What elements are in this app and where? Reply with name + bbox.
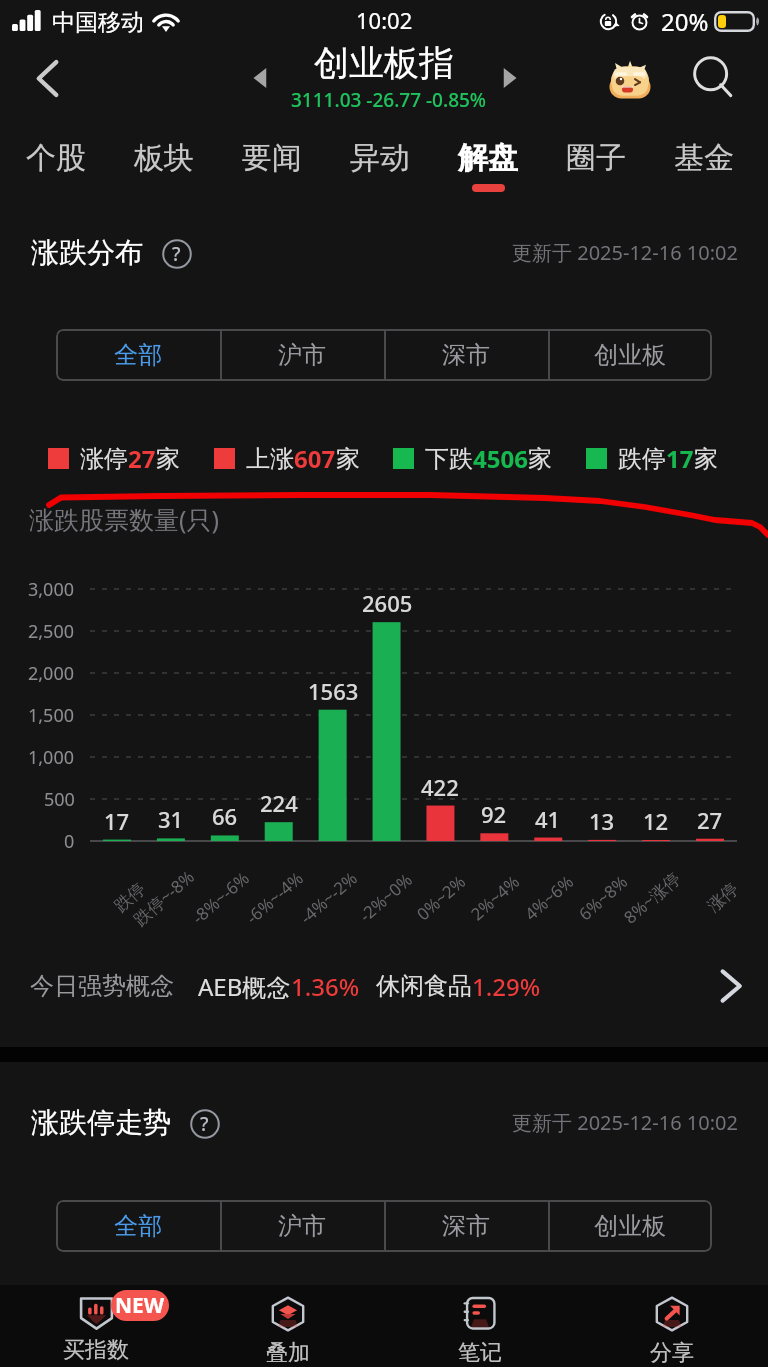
button[interactable]: 全部 bbox=[56, 1200, 220, 1252]
staticText: -2%~0% bbox=[354, 868, 417, 927]
staticText: 3111.03 -26.77 -0.85% bbox=[291, 87, 487, 113]
staticText: 1563 bbox=[308, 676, 359, 706]
staticText: 解盘 bbox=[458, 139, 518, 177]
button[interactable]: 解盘 bbox=[434, 122, 542, 202]
staticText: -6%~-4% bbox=[241, 866, 308, 929]
staticText: 创业板 bbox=[594, 1211, 666, 1241]
button[interactable]: 深市 bbox=[384, 1200, 548, 1252]
staticText: 8%~涨停 bbox=[619, 866, 685, 928]
staticText: 今日强势概念 bbox=[30, 971, 174, 1001]
staticText: ? bbox=[200, 1111, 209, 1137]
staticText: 2%~4% bbox=[466, 870, 524, 925]
staticText: 创业板指 bbox=[314, 41, 454, 85]
staticText: NEW bbox=[115, 1291, 165, 1320]
staticText: 创业板 bbox=[594, 340, 666, 370]
staticText: 深市 bbox=[442, 1211, 490, 1241]
staticText: 4506 bbox=[473, 442, 528, 475]
staticText: 92 bbox=[481, 799, 507, 829]
staticText: 笔记 bbox=[458, 1339, 502, 1367]
staticText: 13 bbox=[589, 806, 615, 836]
staticText: 沪市 bbox=[278, 1211, 326, 1241]
staticText: 全部 bbox=[114, 340, 162, 370]
staticText: 2605 bbox=[362, 588, 413, 618]
staticText: 跌停~-8% bbox=[128, 864, 199, 930]
staticText: 买指数 bbox=[63, 1336, 129, 1364]
staticText: 涨停 bbox=[80, 444, 128, 474]
staticText: 叠加 bbox=[266, 1339, 310, 1367]
staticText: 2,000 bbox=[28, 661, 75, 685]
staticText: 圈子 bbox=[566, 139, 626, 177]
staticText: ? bbox=[172, 241, 181, 267]
button[interactable]: 分享 bbox=[576, 1285, 768, 1367]
staticText: 2,500 bbox=[28, 619, 75, 643]
button[interactable]: 异动 bbox=[326, 122, 434, 202]
button[interactable]: Profile avatar bbox=[598, 48, 662, 112]
button[interactable]: Back bbox=[17, 48, 77, 108]
button[interactable]: 全部 bbox=[56, 329, 220, 381]
button[interactable]: 创业板 bbox=[548, 329, 712, 381]
button[interactable]: 今日强势概念 bbox=[0, 955, 768, 1017]
staticText: 深市 bbox=[442, 340, 490, 370]
staticText: 1,500 bbox=[28, 703, 75, 727]
staticText: 个股 bbox=[26, 139, 86, 177]
staticText: 31 bbox=[158, 804, 184, 834]
staticText: 17 bbox=[666, 442, 694, 475]
staticText: 224 bbox=[260, 788, 298, 818]
staticText: 全部 bbox=[114, 1211, 162, 1241]
staticText: -8%~-6% bbox=[187, 866, 254, 929]
staticText: 10:02 bbox=[356, 5, 413, 35]
staticText: -4%~-2% bbox=[295, 866, 362, 929]
staticText: 上涨 bbox=[246, 444, 294, 474]
button[interactable]: 创业板 bbox=[548, 1200, 712, 1252]
button[interactable]: 深市 bbox=[384, 329, 548, 381]
staticText: 沪市 bbox=[278, 340, 326, 370]
button[interactable]: NEW bbox=[0, 1285, 192, 1367]
button[interactable]: 沪市 bbox=[220, 1200, 384, 1252]
staticText: 板块 bbox=[134, 139, 194, 177]
staticText: 异动 bbox=[350, 139, 410, 177]
staticText: 家 bbox=[156, 444, 180, 474]
staticText: 跌停 bbox=[110, 878, 150, 917]
staticText: 分享 bbox=[650, 1339, 694, 1367]
staticText: 休闲食品 bbox=[376, 971, 472, 1001]
staticText: 涨停 bbox=[703, 878, 743, 917]
button[interactable]: Search bbox=[684, 48, 744, 108]
staticText: 家 bbox=[336, 444, 360, 474]
staticText: 涨跌股票数量(只) bbox=[29, 502, 220, 536]
staticText: 更新于 2025-12-16 10:02 bbox=[512, 1109, 738, 1136]
staticText: 3,000 bbox=[28, 577, 75, 601]
staticText: 下跌 bbox=[425, 444, 473, 474]
button[interactable]: 沪市 bbox=[220, 329, 384, 381]
staticText: 17 bbox=[104, 806, 130, 836]
button[interactable]: 基金 bbox=[650, 122, 758, 202]
staticText: 27 bbox=[697, 805, 723, 835]
staticText: 6%~8% bbox=[574, 870, 632, 925]
button[interactable]: Help bbox=[161, 238, 192, 269]
button[interactable]: 笔记 bbox=[384, 1285, 576, 1367]
button[interactable]: Help bbox=[189, 1108, 220, 1139]
staticText: 500 bbox=[44, 787, 75, 811]
staticText: 家 bbox=[528, 444, 552, 474]
button[interactable]: 叠加 bbox=[192, 1285, 384, 1367]
staticText: 中国移动 bbox=[52, 8, 144, 37]
staticText: 607 bbox=[294, 442, 336, 475]
staticText: 1.36% bbox=[291, 970, 360, 1003]
staticText: AEB概念 bbox=[198, 970, 291, 1003]
staticText: 跌停 bbox=[618, 444, 666, 474]
staticText: 4%~6% bbox=[520, 870, 578, 925]
button[interactable]: 板块 bbox=[110, 122, 218, 202]
staticText: 涨跌分布 bbox=[31, 235, 143, 270]
staticText: 基金 bbox=[674, 139, 734, 177]
staticText: 12 bbox=[643, 806, 669, 836]
button[interactable]: 圈子 bbox=[542, 122, 650, 202]
staticText: 1,000 bbox=[28, 745, 75, 769]
button[interactable]: 个股 bbox=[1, 122, 110, 202]
staticText: 41 bbox=[535, 804, 561, 834]
staticText: 20% bbox=[661, 5, 709, 38]
staticText: 27 bbox=[128, 442, 156, 475]
staticText: 涨跌停走势 bbox=[31, 1105, 171, 1140]
staticText: 更新于 2025-12-16 10:02 bbox=[512, 239, 738, 266]
button[interactable]: 要闻 bbox=[218, 122, 326, 202]
staticText: 要闻 bbox=[242, 139, 302, 177]
staticText: 家 bbox=[694, 444, 718, 474]
